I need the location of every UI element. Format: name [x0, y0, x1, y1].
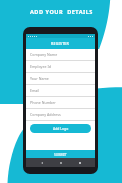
staticText: Phone Number — [30, 100, 56, 105]
button[interactable]: Back — [38, 159, 45, 166]
button[interactable]: Phone Number — [26, 97, 95, 109]
staticText: Email — [30, 88, 40, 93]
staticText: ADD YOUR DETAILS — [30, 8, 93, 16]
button[interactable]: Company Address — [26, 109, 95, 121]
button[interactable]: Email — [26, 85, 95, 97]
button[interactable]: Recents — [76, 159, 83, 166]
staticText: Employee Id — [30, 64, 51, 69]
button[interactable]: Company Name — [26, 49, 95, 61]
button[interactable]: Your Name — [26, 73, 95, 85]
button[interactable]: SUBMIT — [26, 150, 95, 158]
staticText: REGISTER — [51, 41, 70, 46]
button[interactable]: Home — [57, 159, 64, 166]
button[interactable]: Add Logo — [30, 124, 91, 133]
staticText: Add Logo — [53, 126, 69, 131]
staticText: Company Address — [30, 112, 61, 117]
button[interactable]: Employee Id — [26, 61, 95, 73]
staticText: Your Name — [30, 76, 49, 81]
staticText: SUBMIT — [54, 152, 67, 157]
staticText: Company Name — [30, 52, 58, 57]
